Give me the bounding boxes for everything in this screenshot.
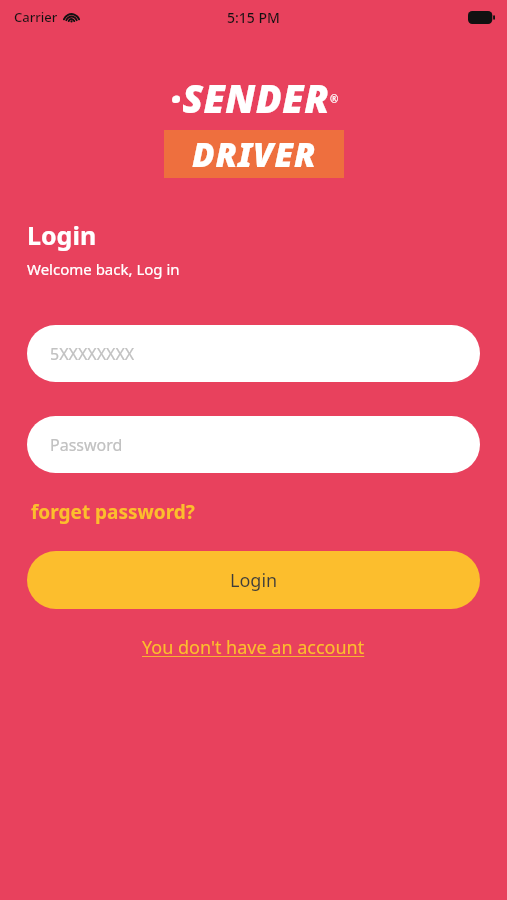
button[interactable]: You don't have an account (134, 629, 373, 666)
staticText: Carrier (14, 8, 58, 26)
button[interactable]: Password (27, 416, 480, 473)
staticText: DRIVER (192, 132, 317, 177)
staticText: Login (230, 568, 278, 593)
staticText: forget password? (31, 499, 195, 525)
staticText: ·SENDER (170, 72, 330, 124)
staticText: Login (27, 218, 97, 252)
staticText: 5XXXXXXXX (50, 343, 135, 365)
staticText: Password (50, 434, 123, 456)
staticText: Welcome back, Log in (27, 259, 180, 279)
button[interactable]: forget password? (27, 495, 199, 529)
button[interactable]: 5XXXXXXXX (27, 325, 480, 382)
staticText: You don't have an account (142, 635, 365, 660)
staticText: 5:15 PM (227, 8, 280, 27)
staticText: ® (330, 92, 339, 106)
button[interactable]: Login (27, 551, 480, 609)
